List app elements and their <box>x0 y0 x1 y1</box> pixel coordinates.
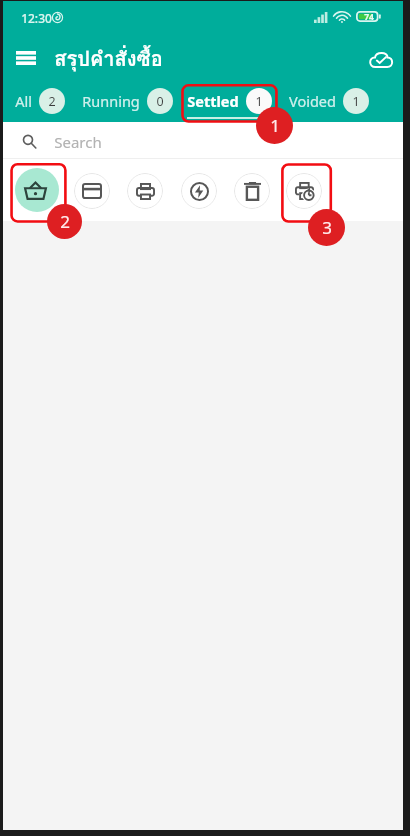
button[interactable]: Payment <box>74 173 110 209</box>
button[interactable]: Running <box>80 79 174 122</box>
button[interactable]: Delete <box>234 173 270 209</box>
button[interactable]: Print <box>127 173 163 209</box>
staticText: Search <box>54 132 102 152</box>
staticText: Running <box>82 91 140 111</box>
button[interactable]: All <box>11 79 68 122</box>
staticText: 74 <box>364 11 374 22</box>
staticText: 3 <box>322 216 332 239</box>
button[interactable]: Sync to cloud <box>360 38 402 80</box>
staticText: 12:30 <box>21 10 52 26</box>
staticText: 1 <box>352 93 360 110</box>
button[interactable]: Menu <box>5 37 47 79</box>
button[interactable]: Settled <box>181 79 277 122</box>
button[interactable]: Reprint receipt <box>286 173 322 209</box>
staticText: 0 <box>156 93 164 110</box>
staticText: สรุปคำสั่งซื้อ <box>54 43 163 75</box>
button[interactable]: Voided <box>285 79 373 122</box>
button[interactable]: Quick sale <box>181 173 217 209</box>
staticText: 1 <box>255 93 263 110</box>
staticText: 1 <box>270 114 280 137</box>
staticText: 2 <box>60 210 70 233</box>
staticText: Voided <box>289 91 336 111</box>
staticText: 2 <box>48 93 56 110</box>
button[interactable]: Orders <box>15 168 59 212</box>
staticText: All <box>15 91 32 111</box>
staticText: Settled <box>187 91 239 111</box>
